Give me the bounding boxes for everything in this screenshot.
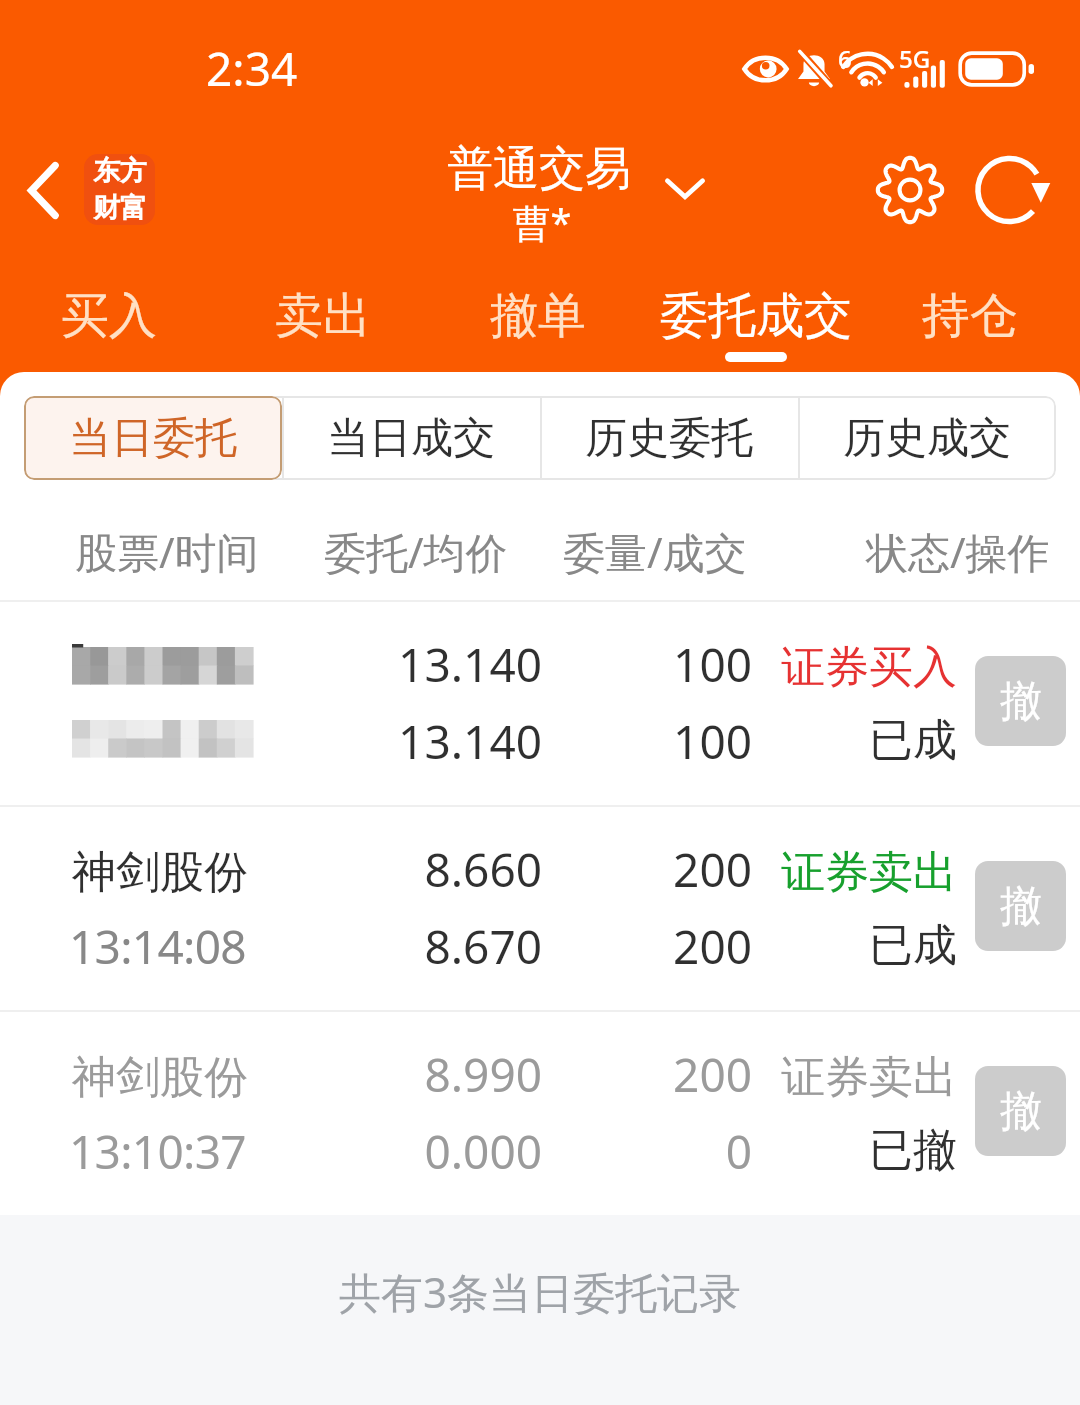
staticText: 证券买入 [755, 640, 957, 695]
button[interactable]: 当日成交 [282, 396, 540, 480]
staticText: 委托成交 [651, 286, 861, 346]
staticText: 13.140 [240, 710, 542, 773]
staticText: 共有3条当日委托记录 [0, 1263, 1080, 1320]
staticText: 买入 [44, 286, 174, 346]
button[interactable] [24, 396, 282, 480]
staticText: 200 [570, 838, 752, 901]
button[interactable]: Back [6, 150, 80, 230]
button[interactable]: 神剑股份 [0, 807, 1080, 1010]
button[interactable]: 普通交易 [420, 130, 720, 250]
staticText: 东方 [93, 154, 147, 188]
staticText: 8.660 [240, 838, 542, 901]
staticText: 已撤 [755, 1123, 957, 1178]
staticText: 13.140 [240, 633, 542, 696]
button[interactable]: 撤单 [975, 861, 1066, 951]
staticText: 200 [570, 915, 752, 978]
staticText: 股票/时间 [75, 523, 259, 580]
staticText: 委托/均价 [324, 523, 508, 580]
staticText: 委量/成交 [563, 523, 747, 580]
staticText: 普通交易 [447, 140, 631, 198]
staticText: 当日委托 [69, 412, 237, 465]
button[interactable]: 神剑股份 [0, 1012, 1080, 1215]
button[interactable]: Refresh [970, 145, 1060, 235]
button[interactable]: 当日委托 [24, 396, 282, 480]
button[interactable]: 委托成交 [651, 276, 861, 372]
staticText: 曹* [422, 196, 662, 248]
staticText: 当日成交 [327, 412, 495, 465]
button[interactable]: 历史成交 [798, 396, 1056, 480]
button[interactable]: 撤单 [975, 656, 1066, 746]
staticText: 0.000 [240, 1120, 542, 1183]
staticText: 2:34 [206, 37, 298, 100]
staticText: 5G [899, 42, 931, 75]
staticText: 6 [838, 42, 852, 75]
staticText: 13:10:37 [69, 1120, 246, 1183]
button[interactable]: 撤单 [473, 276, 603, 372]
button[interactable]: 13.140 [0, 602, 1080, 805]
staticText: 持仓 [905, 286, 1035, 346]
button[interactable]: 持仓 [905, 276, 1035, 372]
staticText: 证券卖出 [755, 845, 957, 900]
staticText: 已成 [755, 918, 957, 973]
staticText: 历史成交 [843, 412, 1011, 465]
button[interactable]: 卖出 [258, 276, 388, 372]
staticText: 8.670 [240, 915, 542, 978]
staticText: 撤 [1000, 675, 1042, 728]
staticText: 证券卖出 [755, 1050, 957, 1105]
button[interactable]: 东方财富 [84, 154, 155, 225]
staticText: 已成 [755, 713, 957, 768]
staticText: 卖出 [258, 286, 388, 346]
staticText: 撤 [1000, 880, 1042, 933]
staticText: 撤单 [473, 286, 603, 346]
staticText: 神剑股份 [72, 845, 248, 900]
staticText: 100 [570, 633, 752, 696]
button[interactable]: 历史委托 [540, 396, 798, 480]
staticText: 200 [570, 1043, 752, 1106]
button[interactable]: Settings [865, 145, 955, 235]
staticText: 100 [570, 710, 752, 773]
staticText: 状态/操作 [866, 523, 1050, 580]
staticText: 撤 [1000, 1085, 1042, 1138]
staticText: 神剑股份 [72, 1050, 248, 1105]
staticText: 财富 [93, 191, 147, 225]
staticText: 13:14:08 [69, 915, 246, 978]
staticText: 历史委托 [585, 412, 753, 465]
button[interactable]: 买入 [44, 276, 174, 372]
button[interactable]: 撤单 [975, 1066, 1066, 1156]
staticText: 0 [570, 1120, 752, 1183]
staticText: 8.990 [240, 1043, 542, 1106]
